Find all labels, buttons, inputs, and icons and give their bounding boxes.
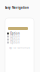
staticText: Option <box>10 38 20 41</box>
staticText: Option <box>10 41 20 44</box>
staticText: Easy Navigation <box>5 6 29 9</box>
staticText: Option <box>10 32 20 35</box>
staticText: Tap to continue <box>8 46 30 49</box>
staticText: Option <box>10 35 20 38</box>
